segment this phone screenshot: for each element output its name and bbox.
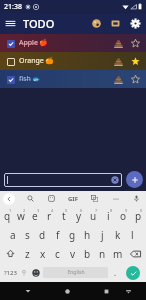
staticText: x xyxy=(40,247,46,261)
staticText: r xyxy=(47,209,52,223)
button[interactable]: x xyxy=(35,244,50,263)
staticText: z xyxy=(25,247,30,261)
button[interactable]: Theme palette xyxy=(87,14,106,33)
button[interactable]: Stickers xyxy=(45,192,58,205)
staticText: 3 xyxy=(37,208,40,213)
staticText: 5 xyxy=(65,208,68,213)
staticText: 🐟 xyxy=(32,75,41,83)
button[interactable]: Clear text xyxy=(7,173,119,187)
button[interactable]: Mark incomplete xyxy=(0,70,146,88)
staticText: 1 xyxy=(9,208,12,213)
button[interactable]: Voice input xyxy=(130,192,143,205)
button[interactable]: Home xyxy=(59,283,75,299)
button[interactable]: 5 xyxy=(56,206,71,225)
staticText: 4 xyxy=(51,208,54,213)
staticText: e xyxy=(32,209,38,223)
button[interactable]: Toggle favourite xyxy=(127,71,144,88)
button[interactable]: GIF xyxy=(66,193,80,205)
button[interactable]: Back xyxy=(3,193,15,205)
staticText: Orange xyxy=(19,56,44,66)
button[interactable]: 9 xyxy=(116,206,131,225)
button[interactable]: z xyxy=(20,244,35,263)
button[interactable]: More options xyxy=(109,192,122,205)
staticText: 6 xyxy=(80,208,83,213)
button[interactable]: Keyboard settings xyxy=(18,263,29,282)
staticText: k xyxy=(115,228,121,242)
button[interactable]: Emoji xyxy=(29,263,43,282)
staticText: 9 xyxy=(125,208,128,213)
button[interactable]: Open navigation menu xyxy=(0,13,21,34)
staticText: 7 xyxy=(95,208,98,213)
button[interactable]: g xyxy=(65,225,80,244)
button[interactable]: ?123 xyxy=(2,263,18,282)
button[interactable]: n xyxy=(95,244,110,263)
button[interactable]: Shift xyxy=(0,244,20,263)
button[interactable]: m xyxy=(110,244,125,263)
button[interactable]: 8 xyxy=(101,206,116,225)
staticText: d xyxy=(39,228,46,242)
button[interactable]: Toggle favourite xyxy=(127,53,144,70)
button[interactable]: Mark incomplete xyxy=(0,34,146,52)
staticText: b xyxy=(84,247,91,261)
staticText: 8 xyxy=(110,208,113,213)
button[interactable]: l xyxy=(125,225,140,244)
button[interactable]: Mark incomplete xyxy=(4,37,17,50)
button[interactable]: a xyxy=(6,225,20,244)
button[interactable]: Recent apps xyxy=(98,283,114,299)
staticText: m xyxy=(113,247,123,261)
button[interactable]: 2 xyxy=(14,206,28,225)
button[interactable]: Search xyxy=(24,192,37,205)
staticText: t xyxy=(62,209,66,223)
button[interactable]: Delete item xyxy=(110,53,127,70)
button[interactable]: c xyxy=(50,244,65,263)
button[interactable]: Backspace xyxy=(125,244,146,263)
button[interactable]: b xyxy=(80,244,95,263)
staticText: TODO xyxy=(23,16,55,31)
button[interactable]: Toggle favourite xyxy=(127,35,144,52)
button[interactable]: 0 xyxy=(131,206,146,225)
staticText: English xyxy=(67,269,85,276)
button[interactable]: Mark complete xyxy=(0,52,146,70)
button[interactable]: Back xyxy=(20,283,36,299)
staticText: s xyxy=(25,228,30,242)
button[interactable]: Mark incomplete xyxy=(4,73,17,86)
staticText: h xyxy=(84,228,91,242)
staticText: a xyxy=(10,228,16,242)
button[interactable]: j xyxy=(95,225,110,244)
button[interactable]: Clear text xyxy=(111,176,119,184)
staticText: o xyxy=(120,209,127,223)
button[interactable]: 7 xyxy=(86,206,101,225)
staticText: 0 xyxy=(140,208,143,213)
button[interactable]: 4 xyxy=(42,206,56,225)
staticText: j xyxy=(101,228,104,242)
button[interactable]: Enter xyxy=(122,263,144,282)
staticText: l xyxy=(131,228,134,242)
button[interactable]: Delete item xyxy=(110,35,127,52)
button[interactable]: d xyxy=(35,225,50,244)
button[interactable]: 1 xyxy=(0,206,14,225)
button[interactable]: Delete item xyxy=(110,71,127,88)
button[interactable]: Translate xyxy=(88,192,101,205)
staticText: w xyxy=(17,209,25,223)
button[interactable]: 6 xyxy=(71,206,86,225)
button[interactable]: Settings xyxy=(125,13,146,34)
button[interactable]: v xyxy=(65,244,80,263)
button[interactable]: 3 xyxy=(28,206,42,225)
button[interactable]: English xyxy=(43,267,108,278)
staticText: ?123 xyxy=(4,269,17,277)
button[interactable]: h xyxy=(80,225,95,244)
button[interactable]: s xyxy=(20,225,35,244)
staticText: n xyxy=(99,247,106,261)
button[interactable]: . xyxy=(108,263,122,282)
button[interactable]: f xyxy=(50,225,65,244)
staticText: i xyxy=(107,209,110,223)
staticText: f xyxy=(56,228,60,242)
button[interactable]: k xyxy=(110,225,125,244)
button[interactable]: Hide keyboard xyxy=(122,285,134,297)
button[interactable]: Add item xyxy=(126,171,143,188)
staticText: u xyxy=(90,209,97,223)
button[interactable]: Archive xyxy=(106,14,125,33)
button[interactable]: Mark complete xyxy=(4,55,17,68)
staticText: 2 xyxy=(23,208,26,213)
staticText: g xyxy=(69,228,76,242)
